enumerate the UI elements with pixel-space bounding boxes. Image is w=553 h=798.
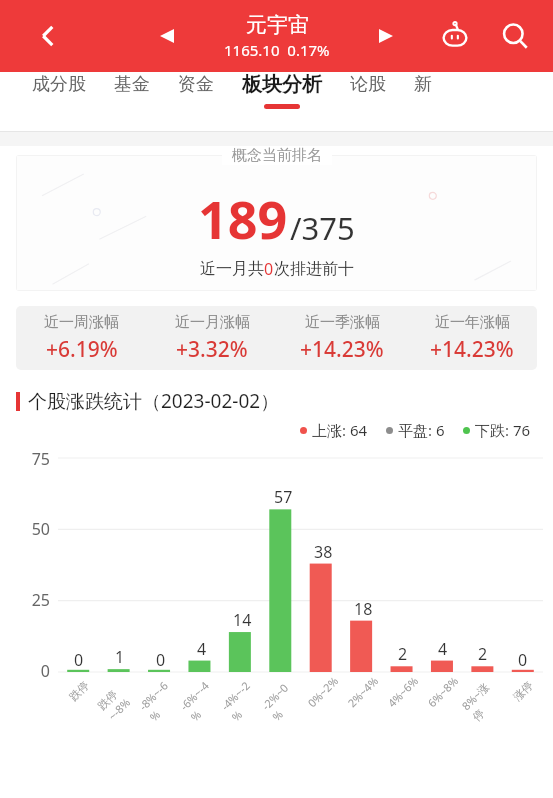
button[interactable]: 近一年涨幅 — [407, 313, 537, 364]
staticText: -8%~-6% — [135, 674, 186, 724]
staticText: 1165.10 0.17% — [224, 40, 330, 60]
staticText: 75 — [16, 448, 50, 470]
staticText: 0 — [156, 649, 166, 671]
staticText: 8%~涨停 — [458, 674, 508, 724]
staticText: 4 — [197, 638, 207, 660]
staticText: 近一月涨幅 — [175, 313, 250, 332]
staticText: 资金 — [178, 73, 214, 96]
button[interactable]: 近一周涨幅 — [16, 313, 147, 364]
staticText: /375 — [290, 207, 355, 249]
staticText: 概念当前排名 — [232, 146, 322, 165]
button[interactable]: 板块分析 — [228, 72, 336, 109]
staticText: 近一周涨幅 — [44, 313, 119, 332]
staticText: 57 — [274, 486, 293, 508]
staticText: 0 — [74, 649, 84, 671]
staticText: 0 — [16, 660, 50, 682]
button[interactable]: 论股 — [336, 73, 400, 108]
staticText: 4 — [438, 638, 448, 660]
staticText: 2 — [478, 643, 488, 665]
staticText: 成分股 — [32, 73, 86, 96]
button[interactable]: Back — [28, 16, 68, 56]
staticText: 近一月共 — [200, 259, 264, 279]
staticText: -2%~0% — [258, 674, 308, 724]
staticText: 上涨: 64 — [312, 420, 368, 440]
staticText: -6%~-4% — [176, 674, 227, 724]
button[interactable]: Search — [493, 14, 537, 58]
button[interactable]: 资金 — [164, 73, 228, 108]
staticText: +14.23% — [300, 335, 384, 364]
button[interactable]: 新 — [400, 73, 446, 108]
staticText: 个股涨跌统计（2023-02-02） — [28, 388, 280, 414]
staticText: 跌停~-8% — [95, 674, 144, 723]
staticText: 4%~6% — [384, 673, 422, 710]
staticText: +14.23% — [430, 335, 514, 364]
staticText: 189 — [198, 183, 288, 254]
button[interactable]: 成分股 — [18, 73, 100, 108]
staticText: 2%~4% — [344, 673, 382, 710]
staticText: 0 — [518, 649, 528, 671]
staticText: 14 — [233, 609, 252, 631]
staticText: 跌停 — [66, 678, 92, 704]
staticText: 板块分析 — [242, 72, 322, 97]
staticText: +6.19% — [46, 335, 118, 364]
staticText: 0%~2% — [304, 673, 342, 710]
staticText: 次排进前十 — [274, 259, 354, 279]
button[interactable]: Next — [369, 19, 403, 53]
staticText: 平盘: 6 — [398, 420, 445, 440]
staticText: 近一年涨幅 — [435, 313, 510, 332]
staticText: 近一季涨幅 — [305, 313, 380, 332]
staticText: 18 — [354, 598, 373, 620]
button[interactable]: Previous — [150, 19, 184, 53]
staticText: 2 — [398, 643, 408, 665]
staticText: -4%~-2% — [217, 674, 268, 724]
button[interactable]: 近一季涨幅 — [277, 313, 407, 364]
button[interactable]: AI assistant — [435, 16, 475, 56]
staticText: 25 — [16, 589, 50, 611]
staticText: 基金 — [114, 73, 150, 96]
staticText: 50 — [16, 518, 50, 540]
button[interactable]: 近一月涨幅 — [147, 313, 277, 364]
staticText: 1 — [115, 646, 125, 668]
staticText: 0 — [264, 258, 274, 280]
staticText: +3.32% — [176, 335, 248, 364]
button[interactable]: 基金 — [100, 73, 164, 108]
staticText: 下跌: 76 — [475, 420, 531, 440]
staticText: 论股 — [350, 73, 386, 96]
staticText: 6%~8% — [424, 673, 462, 710]
staticText: 38 — [314, 541, 333, 563]
staticText: 涨停 — [510, 678, 536, 704]
staticText: 元宇宙 — [246, 12, 309, 38]
staticText: 新 — [414, 73, 432, 96]
